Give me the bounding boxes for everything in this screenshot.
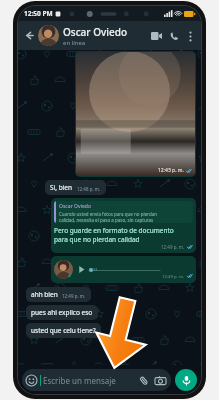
button[interactable]: Voice message [51,256,196,283]
staticText: 12:49 p. m. [162,273,185,279]
button[interactable]: Video call [147,27,165,45]
staticText: Oscar Oviedo [59,203,92,210]
button[interactable]: Profile photo [38,25,59,46]
button[interactable]: pues ahi explico eso [26,305,98,320]
button[interactable]: Back [22,28,37,43]
button[interactable]: Voice call [165,27,183,45]
staticText: 0:03 [89,267,98,273]
staticText: Pero guarde en formato de documento [54,226,174,235]
staticText: en línea [63,39,86,47]
staticText: pues ahi explico eso [31,308,93,317]
button[interactable]: More options [183,29,197,43]
staticText: ahh bien [31,290,58,299]
staticText: Oscar Oviedo [63,25,128,39]
staticText: 12:48 p. m. [77,186,101,192]
button[interactable]: Record voice message [175,369,197,391]
staticText: usted que celu tiene? [31,326,96,335]
button[interactable]: Photo message [76,52,195,176]
staticText: para que no pierdan calidad [54,235,140,244]
button[interactable]: Escribe un mensaje [22,369,171,391]
button[interactable]: usted que celu tiene? [26,323,101,338]
button[interactable]: Oscar Oviedo [63,25,147,47]
other: Pointer arrow [96,298,150,368]
staticText: Cuando usted envía fotos para que no pie… [59,211,158,217]
staticText: 12:50 PM [24,9,53,18]
staticText: calidad, necesita el paso a paso, sin ca… [59,217,154,223]
staticText: 12:43 p. m. [158,167,184,174]
staticText: 12:49 p. m. [62,293,86,299]
button[interactable]: Attach [137,374,150,387]
button[interactable]: Camera [154,374,167,387]
staticText: Escribe un mensaje [43,375,137,386]
staticText: Si, bien [50,183,73,192]
button[interactable]: ahh bien [26,287,91,302]
staticText: 12:49 p. m. [161,244,185,250]
button[interactable]: Si, bien [45,180,106,195]
button[interactable]: Oscar Oviedo [51,198,196,253]
